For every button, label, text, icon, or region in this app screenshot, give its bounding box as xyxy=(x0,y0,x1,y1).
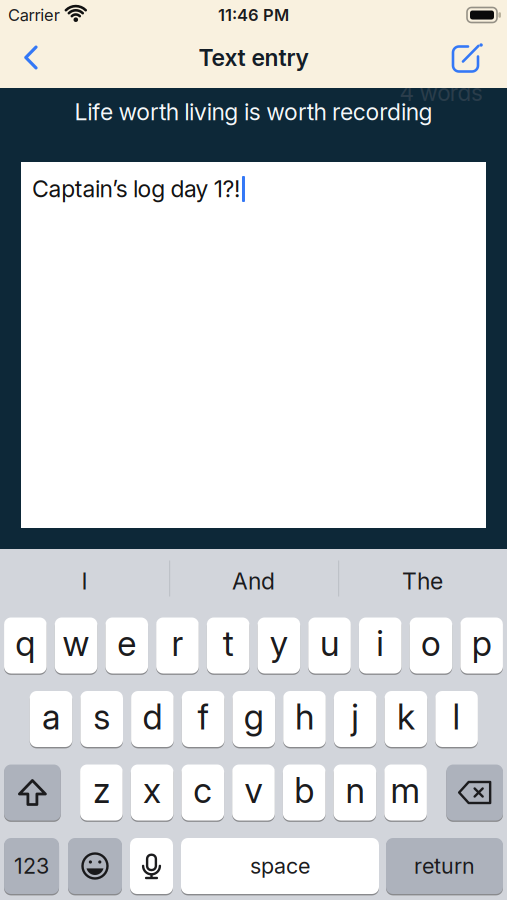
button[interactable]: s xyxy=(80,691,123,747)
button[interactable]: return xyxy=(386,838,503,894)
staticText: j xyxy=(351,696,359,738)
button[interactable]: space xyxy=(181,838,379,894)
button[interactable]: t xyxy=(207,617,249,673)
button[interactable]: m xyxy=(384,764,427,820)
button[interactable]: p xyxy=(460,617,503,673)
staticText: g xyxy=(244,696,264,738)
button[interactable]: x xyxy=(131,764,173,820)
staticText: f xyxy=(198,696,209,738)
staticText: t xyxy=(223,622,234,664)
staticText: b xyxy=(294,769,314,811)
staticText: The xyxy=(402,567,443,595)
button[interactable]: 123 xyxy=(4,838,59,894)
staticText: return xyxy=(414,853,475,879)
button[interactable]: y xyxy=(258,617,300,673)
staticText: x xyxy=(143,769,161,811)
button[interactable]: q xyxy=(4,617,47,673)
button[interactable]: c xyxy=(181,764,224,820)
staticText: v xyxy=(244,769,262,811)
staticText: 4 words xyxy=(399,79,483,106)
button[interactable] xyxy=(446,764,503,820)
button[interactable]: And xyxy=(169,551,338,610)
button[interactable]: b xyxy=(283,764,325,820)
button[interactable] xyxy=(130,838,173,894)
staticText: 123 xyxy=(14,853,49,879)
staticText: Captain’s log day 1?! xyxy=(32,175,240,203)
button[interactable]: g xyxy=(232,691,275,747)
button[interactable]: e xyxy=(105,617,148,673)
button[interactable]: i xyxy=(359,617,402,673)
button[interactable]: h xyxy=(283,691,326,747)
staticText: u xyxy=(320,622,339,664)
staticText: l xyxy=(453,696,461,738)
button[interactable]: f xyxy=(182,691,224,747)
staticText: c xyxy=(193,769,212,811)
staticText: d xyxy=(142,696,162,738)
staticText: Life worth living is worth recording xyxy=(74,98,432,126)
staticText: Carrier xyxy=(8,5,60,25)
button[interactable] xyxy=(0,45,46,69)
staticText: q xyxy=(15,622,35,664)
button[interactable] xyxy=(68,838,122,894)
staticText: w xyxy=(62,622,89,664)
button[interactable]: o xyxy=(410,617,452,673)
button[interactable]: r xyxy=(156,617,199,673)
button[interactable]: l xyxy=(435,691,478,747)
button[interactable] xyxy=(453,42,507,72)
button[interactable]: z xyxy=(80,764,123,820)
staticText: p xyxy=(472,622,492,664)
button[interactable]: v xyxy=(232,764,275,820)
button[interactable]: k xyxy=(385,691,427,747)
button[interactable]: d xyxy=(131,691,174,747)
button[interactable]: j xyxy=(334,691,376,747)
staticText: y xyxy=(270,622,288,664)
staticText: 11:46 PM xyxy=(218,5,289,25)
staticText: z xyxy=(93,769,110,811)
button[interactable]: w xyxy=(55,617,97,673)
staticText: k xyxy=(397,696,415,738)
button[interactable]: The xyxy=(338,551,507,610)
button[interactable]: I xyxy=(0,551,169,610)
button[interactable]: n xyxy=(334,764,376,820)
button[interactable]: a xyxy=(30,691,72,747)
staticText: o xyxy=(421,622,441,664)
staticText: a xyxy=(42,696,60,738)
button[interactable]: u xyxy=(308,617,351,673)
staticText: I xyxy=(81,567,87,595)
staticText: Text entry xyxy=(198,43,308,71)
staticText: And xyxy=(232,567,275,595)
button[interactable] xyxy=(4,764,61,820)
staticText: i xyxy=(376,622,384,664)
staticText: r xyxy=(171,622,183,664)
staticText: m xyxy=(391,769,421,811)
staticText: h xyxy=(295,696,314,738)
staticText: n xyxy=(345,769,364,811)
staticText: space xyxy=(250,853,310,879)
staticText: e xyxy=(117,622,136,664)
staticText: s xyxy=(93,696,110,738)
